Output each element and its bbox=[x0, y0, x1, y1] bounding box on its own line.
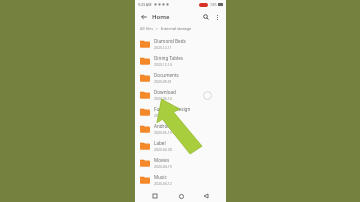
button[interactable]: Back bbox=[139, 12, 149, 22]
button[interactable]: Android bbox=[135, 120, 226, 137]
button[interactable]: Music bbox=[135, 171, 226, 188]
staticText: 2023-02-28 bbox=[154, 147, 172, 152]
staticText: 2023-09-01 bbox=[154, 79, 172, 84]
button[interactable]: Home bbox=[175, 190, 187, 202]
staticText: 2023-05-19 bbox=[154, 130, 172, 135]
staticText: 2023-12-11 bbox=[154, 45, 172, 50]
staticText: Furniture Design bbox=[154, 106, 191, 112]
button[interactable]: Furniture Design bbox=[135, 103, 226, 120]
button[interactable]: Back bbox=[200, 190, 212, 202]
staticText: 2023-11-02 bbox=[154, 113, 172, 118]
staticText: 9:23 AM bbox=[138, 2, 152, 7]
button[interactable]: Dining Tables bbox=[135, 52, 226, 69]
button[interactable]: Diamond Beds bbox=[135, 35, 226, 52]
button[interactable]: Recent apps bbox=[149, 190, 161, 202]
staticText: > bbox=[156, 26, 159, 31]
button[interactable]: Movies bbox=[135, 154, 226, 171]
staticText: Diamond Beds bbox=[154, 38, 186, 44]
staticText: Documents bbox=[154, 72, 179, 78]
staticText: 74% bbox=[210, 2, 217, 7]
staticText: 2023-04-12 bbox=[154, 181, 172, 186]
button[interactable]: More options bbox=[212, 12, 222, 22]
staticText: Label bbox=[154, 140, 166, 146]
staticText: Movies bbox=[154, 157, 170, 163]
button[interactable]: Label bbox=[135, 137, 226, 154]
staticText: 2023-06-14 bbox=[154, 96, 172, 101]
button[interactable]: Internal storage bbox=[161, 26, 192, 31]
button[interactable]: Search bbox=[201, 12, 211, 22]
staticText: Home bbox=[152, 13, 170, 21]
staticText: 2023-12-14 bbox=[154, 62, 172, 67]
button[interactable]: Documents bbox=[135, 69, 226, 86]
staticText: Music bbox=[154, 174, 167, 180]
button[interactable]: Download bbox=[135, 86, 226, 103]
staticText: Android bbox=[154, 123, 172, 129]
button[interactable]: All files bbox=[140, 26, 154, 31]
staticText: Dining Tables bbox=[154, 55, 183, 61]
staticText: Download bbox=[154, 89, 176, 95]
staticText: 2023-04-19 bbox=[154, 164, 172, 169]
